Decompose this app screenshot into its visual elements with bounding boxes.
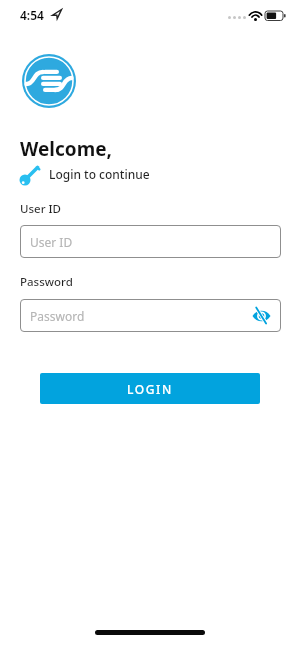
- button[interactable]: Password: [20, 299, 281, 332]
- staticText: 4:54: [20, 7, 44, 23]
- button[interactable]: User ID: [20, 225, 281, 258]
- staticText: Password: [20, 274, 73, 290]
- button[interactable]: LOGIN: [40, 373, 260, 404]
- staticText: Login to continue: [49, 166, 150, 182]
- button[interactable]: [252, 308, 271, 324]
- button[interactable]: Login to continue: [18, 163, 150, 185]
- staticText: LOGIN: [127, 381, 173, 397]
- staticText: User ID: [20, 201, 62, 217]
- staticText: Password: [30, 308, 85, 324]
- staticText: Welcome,: [20, 136, 112, 162]
- staticText: User ID: [30, 234, 73, 250]
